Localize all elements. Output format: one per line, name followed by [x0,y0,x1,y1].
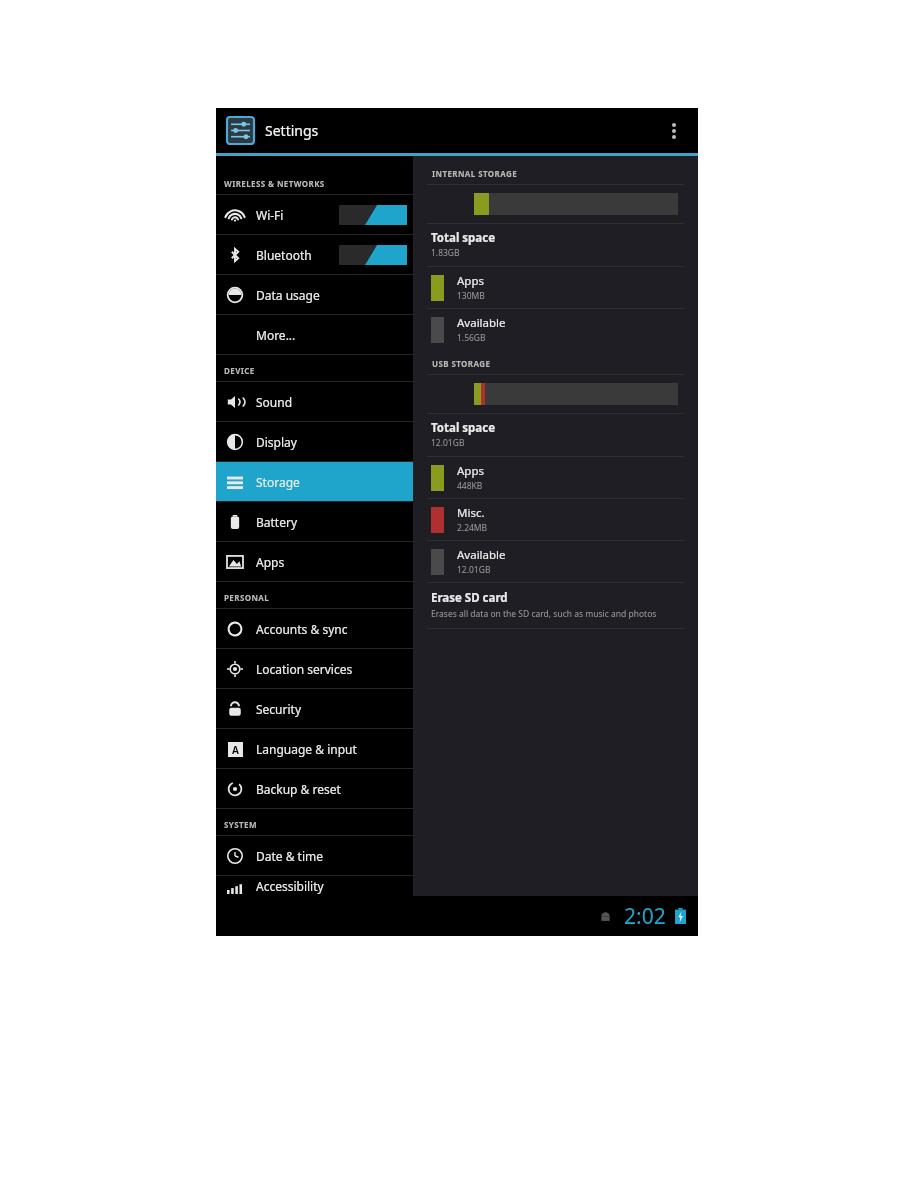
staticText: Apps [256,554,285,570]
staticText: Location services [256,661,353,677]
button[interactable]: Accounts & sync [216,609,413,648]
staticText: Available [457,315,506,331]
staticText: Erases all data on the SD card, such as … [431,608,657,620]
staticText: Battery [256,514,298,530]
staticText: WIRELESS & NETWORKS [224,178,325,189]
button[interactable]: Battery [216,502,413,541]
staticText: 1.83GB [431,247,460,259]
staticText: DEVICE [224,365,255,376]
button[interactable]: Apps [413,457,698,498]
button[interactable]: Bluetooth [216,235,413,274]
button[interactable]: Display [216,422,413,461]
staticText: Total space [431,420,496,436]
staticText: 448KB [457,480,483,492]
staticText: Accessibility [256,878,324,894]
button[interactable]: Available [413,309,698,350]
button[interactable]: Erase SD card [413,583,698,628]
button[interactable]: Misc. [413,499,698,540]
button[interactable]: More... [216,315,413,354]
staticText: A [232,743,239,757]
staticText: Misc. [457,505,485,521]
button[interactable]: Android [596,907,614,925]
staticText: Settings [265,121,319,140]
button[interactable]: Apps [216,542,413,581]
staticText: 12.01GB [457,564,491,576]
button[interactable]: Security [216,689,413,728]
staticText: Backup & reset [256,781,341,797]
staticText: Sound [256,394,293,410]
button[interactable]: Apps [413,267,698,308]
button[interactable]: Total space [413,414,698,456]
staticText: Data usage [256,287,320,303]
button[interactable]: Accessibility [216,876,413,896]
button[interactable]: Total space [413,224,698,266]
staticText: 2.24MB [457,522,488,534]
staticText: Available [457,547,506,563]
button[interactable]: Date & time [216,836,413,875]
button[interactable]: More options [658,115,690,147]
staticText: Language & input [256,741,357,757]
staticText: SYSTEM [224,819,257,830]
staticText: 130MB [457,290,485,302]
staticText: PERSONAL [224,592,270,603]
staticText: Date & time [256,848,324,864]
staticText: Display [256,434,297,450]
staticText: Wi-Fi [256,207,284,223]
staticText: Total space [431,230,496,246]
button[interactable]: Available [413,541,698,582]
staticText: Storage [256,474,300,490]
staticText: Apps [457,463,485,479]
staticText: Accounts & sync [256,621,348,637]
staticText: 2:02 [624,902,666,931]
staticText: Erase SD card [431,590,508,606]
staticText: Apps [457,273,485,289]
button[interactable]: Storage [216,462,413,501]
staticText: USB STORAGE [432,358,491,369]
staticText: More... [256,327,296,343]
button[interactable]: Data usage [216,275,413,314]
button[interactable]: A [216,729,413,768]
staticText: 12.01GB [431,437,465,449]
button[interactable]: Location services [216,649,413,688]
button[interactable]: Backup & reset [216,769,413,808]
staticText: Security [256,701,302,717]
button[interactable]: Sound [216,382,413,421]
button[interactable]: Wi-Fi [216,195,413,234]
staticText: 1.56GB [457,332,486,344]
staticText: Bluetooth [256,247,312,263]
staticText: INTERNAL STORAGE [432,168,518,179]
